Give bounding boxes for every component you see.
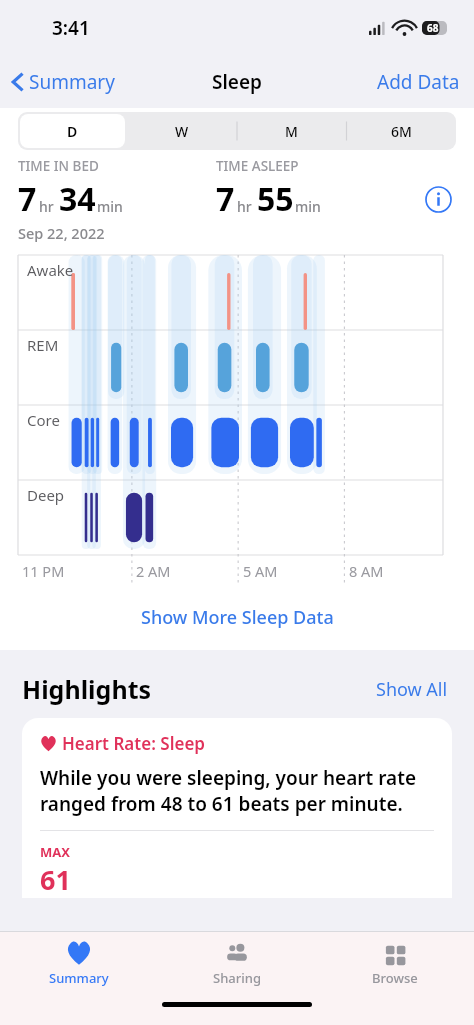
button[interactable]: Heart Rate: Sleep [22, 718, 452, 898]
staticText: hr [237, 197, 252, 216]
button[interactable]: Summary [0, 932, 158, 995]
button[interactable]: W [129, 114, 234, 148]
staticText: 7 [18, 177, 37, 221]
staticText: Core [27, 410, 60, 430]
staticText: hr [39, 197, 54, 216]
staticText: MAX [40, 843, 70, 861]
staticText: 11 PM [22, 561, 65, 581]
staticText: 2 AM [136, 561, 171, 581]
staticText: 3:41 [52, 15, 90, 41]
staticText: 7 [216, 177, 235, 221]
button[interactable]: Information [420, 181, 456, 217]
staticText: Highlights [22, 672, 372, 706]
staticText: min [295, 197, 321, 216]
staticText: 34 [59, 177, 96, 221]
staticText: 61 [40, 861, 71, 898]
staticText: W [175, 122, 189, 141]
staticText: Awake [27, 260, 74, 280]
staticText: Sep 22, 2022 [18, 223, 105, 243]
staticText: TIME IN BED [18, 157, 99, 175]
button[interactable]: Add Data [363, 63, 474, 101]
button[interactable]: 6M [348, 114, 454, 148]
button[interactable]: Browse [316, 932, 474, 995]
button[interactable]: Summary [6, 64, 121, 100]
staticText: 55 [257, 177, 294, 221]
staticText: Sharing [213, 969, 261, 987]
staticText: While you were sleeping, your heart rate… [40, 765, 434, 817]
staticText: Heart Rate: Sleep [62, 732, 205, 755]
button[interactable]: Sharing [158, 932, 316, 995]
button[interactable]: Show All [372, 673, 452, 706]
staticText: 5 AM [243, 561, 278, 581]
staticText: Sleep [212, 69, 262, 95]
staticText: REM [27, 335, 59, 355]
staticText: M [285, 122, 298, 141]
staticText: Deep [27, 485, 65, 505]
staticText: Summary [29, 69, 115, 95]
staticText: TIME ASLEEP [216, 157, 299, 175]
button[interactable]: D [20, 114, 125, 148]
staticText: 6M [391, 122, 412, 141]
button[interactable]: Show More Sleep Data [0, 601, 474, 634]
staticText: Summary [49, 969, 109, 987]
staticText: Show More Sleep Data [141, 605, 334, 630]
staticText: 8 AM [349, 561, 384, 581]
staticText: min [97, 197, 123, 216]
button[interactable]: M [238, 114, 344, 148]
staticText: 68 [427, 21, 439, 35]
staticText: Browse [372, 969, 418, 987]
staticText: D [67, 122, 78, 141]
